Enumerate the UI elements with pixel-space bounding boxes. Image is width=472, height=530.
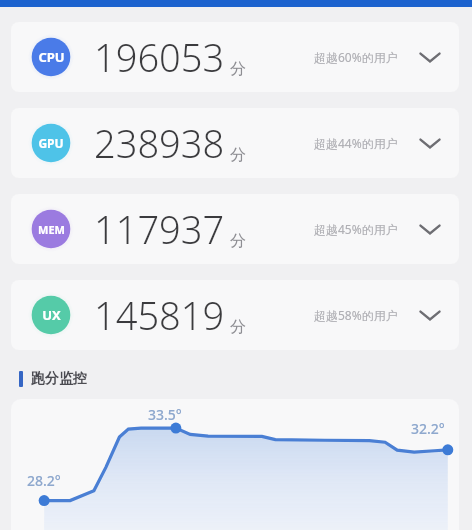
staticText: 超越44%的用户: [314, 135, 398, 151]
button[interactable]: 28.2°: [11, 399, 459, 530]
staticText: 145819: [94, 289, 225, 341]
staticText: CPU: [38, 48, 65, 66]
staticText: 分: [230, 317, 246, 337]
staticText: 超越45%的用户: [314, 221, 398, 237]
button[interactable]: 展开 UX 详情: [413, 298, 447, 332]
staticText: 117937: [94, 203, 225, 255]
button[interactable]: MEM: [11, 194, 459, 264]
staticText: 超越58%的用户: [314, 307, 398, 323]
staticText: 196053: [94, 31, 225, 83]
staticText: 超越60%的用户: [314, 49, 398, 65]
button[interactable]: UX: [11, 280, 459, 350]
staticText: 分: [230, 231, 246, 251]
staticText: GPU: [38, 135, 64, 151]
button[interactable]: CPU: [11, 22, 459, 92]
staticText: 28.2°: [27, 471, 61, 490]
button[interactable]: 展开 GPU 详情: [413, 126, 447, 160]
staticText: 跑分监控: [31, 370, 87, 388]
staticText: 33.5°: [148, 405, 182, 424]
staticText: 238938: [94, 117, 225, 169]
staticText: 分: [230, 145, 246, 165]
staticText: MEM: [38, 222, 65, 237]
staticText: 分: [230, 59, 246, 79]
button[interactable]: GPU: [11, 108, 459, 178]
button[interactable]: 展开 CPU 详情: [413, 40, 447, 74]
staticText: UX: [42, 306, 61, 324]
staticText: 32.2°: [411, 419, 445, 438]
button[interactable]: 展开 MEM 详情: [413, 212, 447, 246]
